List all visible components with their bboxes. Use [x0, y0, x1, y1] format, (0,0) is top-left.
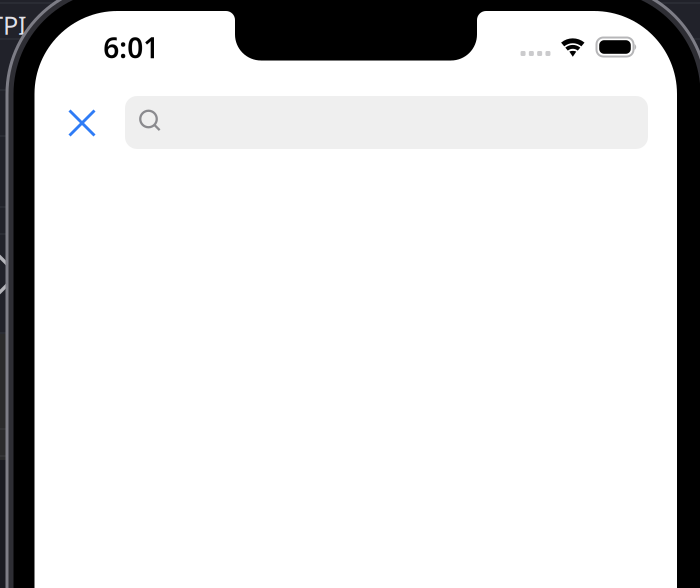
staticText: 6:01: [103, 29, 159, 66]
button[interactable]: Close search: [55, 96, 109, 150]
button[interactable]: Search: [125, 96, 648, 149]
staticText: TPI: [0, 8, 27, 42]
